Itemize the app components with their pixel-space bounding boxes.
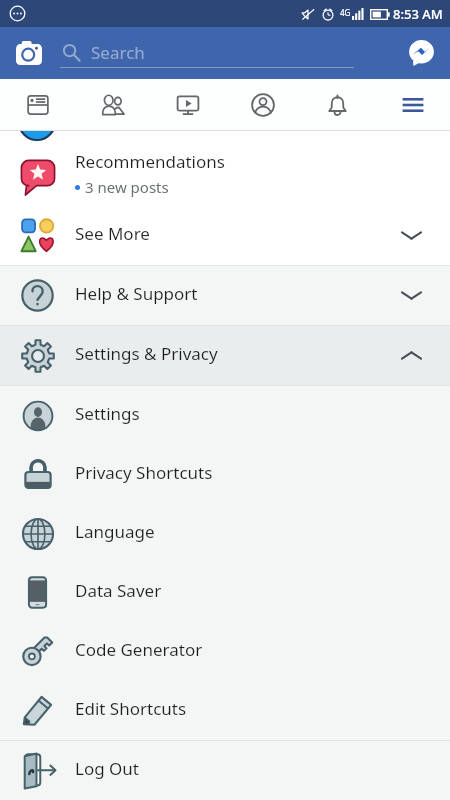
staticText: Privacy Shortcuts — [75, 461, 213, 484]
button[interactable]: Settings — [0, 386, 450, 445]
staticText: 4G — [340, 7, 351, 18]
staticText: 3 new posts — [85, 177, 169, 197]
staticText: Settings — [75, 402, 140, 425]
button[interactable]: Search — [57, 27, 392, 79]
staticText: Settings & Privacy — [75, 342, 218, 365]
button[interactable]: Friends — [75, 79, 150, 131]
staticText: Log Out — [75, 757, 139, 780]
staticText: Data Saver — [75, 579, 162, 602]
button[interactable]: Profile — [225, 79, 300, 131]
staticText: 8:53 AM — [393, 5, 443, 23]
staticText: Edit Shortcuts — [75, 697, 187, 720]
button[interactable]: See More — [0, 206, 450, 265]
staticText: Recommendations — [75, 150, 225, 173]
button[interactable]: Camera — [0, 27, 57, 79]
button[interactable]: Log Out — [0, 741, 450, 800]
button[interactable]: Notifications — [300, 79, 375, 131]
button[interactable]: Menu — [375, 79, 450, 131]
button[interactable]: News Feed — [0, 79, 75, 131]
button[interactable]: Recommendations — [0, 147, 450, 206]
button[interactable]: Privacy Shortcuts — [0, 445, 450, 504]
staticText: Search — [91, 41, 145, 64]
staticText: See More — [75, 222, 150, 245]
button[interactable]: Edit Shortcuts — [0, 681, 450, 740]
staticText: Language — [75, 520, 155, 543]
staticText: Help & Support — [75, 282, 198, 305]
button[interactable]: Language — [0, 504, 450, 563]
button[interactable]: Help & Support — [0, 266, 450, 325]
button[interactable]: Code Generator — [0, 622, 450, 681]
button[interactable]: Settings & Privacy — [0, 326, 450, 385]
button[interactable]: Messenger — [392, 27, 450, 79]
button[interactable]: Watch — [150, 79, 225, 131]
button[interactable]: Data Saver — [0, 563, 450, 622]
staticText: Code Generator — [75, 638, 203, 661]
